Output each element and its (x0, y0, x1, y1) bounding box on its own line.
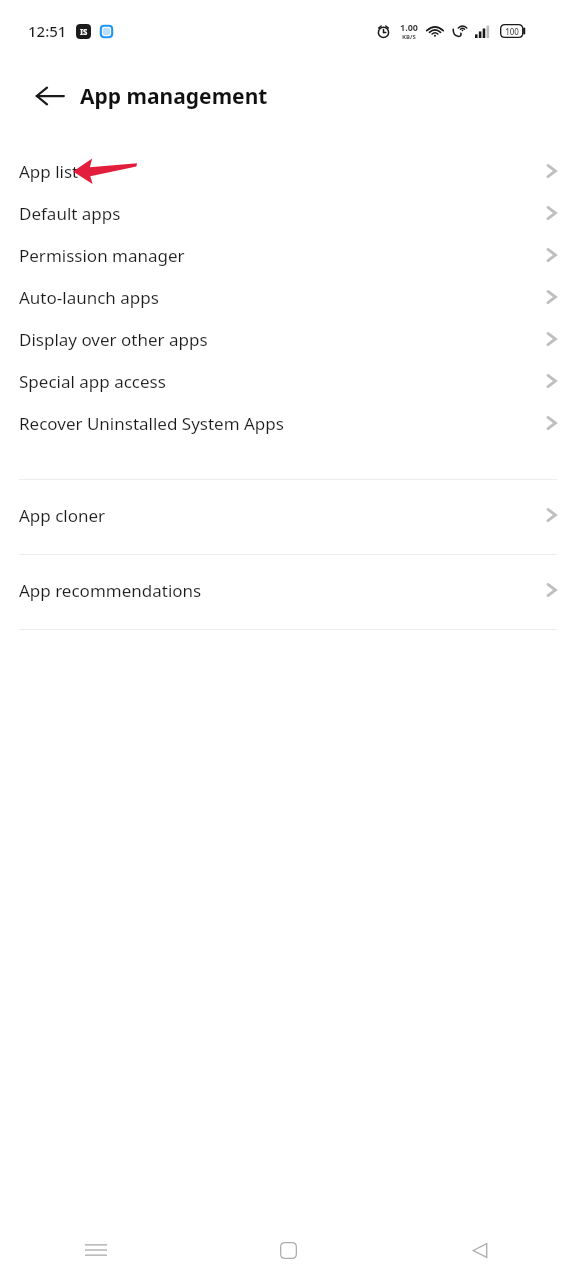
staticText: KB/S (402, 33, 416, 41)
button[interactable]: Display over other apps (0, 318, 576, 360)
button[interactable]: Home (192, 1220, 384, 1280)
staticText: Special app access (19, 370, 166, 393)
staticText: Auto-launch apps (19, 286, 159, 309)
staticText: App cloner (19, 504, 106, 527)
button[interactable]: Auto-launch apps (0, 276, 576, 318)
staticText: Default apps (19, 202, 121, 225)
button[interactable]: Back (384, 1220, 576, 1280)
button[interactable]: App recommendations (0, 569, 576, 611)
staticText: Permission manager (19, 244, 185, 267)
staticText: Recover Uninstalled System Apps (19, 412, 284, 435)
button[interactable]: Permission manager (0, 234, 576, 276)
staticText: 100 (505, 26, 519, 37)
staticText: App list (19, 160, 79, 183)
staticText: App recommendations (19, 579, 202, 602)
staticText: 12:51 (28, 21, 67, 41)
staticText: Display over other apps (19, 328, 208, 351)
button[interactable]: Special app access (0, 360, 576, 402)
staticText: IS (80, 26, 88, 37)
button[interactable]: Default apps (0, 192, 576, 234)
staticText: App management (80, 82, 268, 111)
button[interactable]: Back (22, 68, 78, 124)
staticText: 1.00 (400, 21, 418, 33)
button[interactable]: Recover Uninstalled System Apps (0, 402, 576, 444)
button[interactable]: App list (0, 150, 576, 192)
button[interactable]: App cloner (0, 494, 576, 536)
button[interactable]: Recent apps (0, 1220, 192, 1280)
